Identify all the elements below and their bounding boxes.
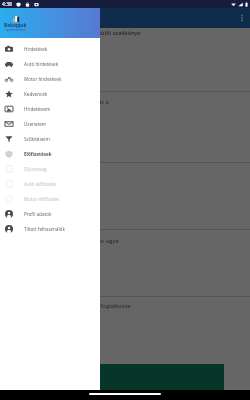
button[interactable]: Hirdetések: [0, 41, 100, 56]
button[interactable]: Díjcsomag: [0, 161, 100, 176]
button[interactable]: Kedvencek: [0, 86, 100, 101]
staticText: Autó előfizetés: [24, 181, 56, 187]
staticText: Díjcsomag: [24, 166, 47, 172]
button[interactable]: Tiltott felhasználók: [0, 221, 100, 236]
button[interactable]: Motor hirdetések: [0, 71, 100, 86]
staticText: Profil adatok: [24, 211, 52, 217]
staticText: Előfizetések: [24, 151, 52, 157]
staticText: apróhirdetések: [6, 28, 26, 32]
button[interactable]: Motor előfizetés: [0, 191, 100, 206]
staticText: A hirdetés ügye: [77, 237, 119, 245]
staticText: Minden benne foglalkozva: [60, 302, 131, 310]
staticText: Tiltott felhasználók: [24, 226, 65, 232]
staticText: Motor előfizetés: [24, 196, 59, 202]
staticText: Autó hirdetések: [24, 61, 59, 67]
button[interactable]: Szűkítéseim: [0, 131, 100, 146]
staticText: Hirdetéseim: [24, 106, 51, 112]
staticText: Hirdetések: [24, 46, 48, 52]
button[interactable]: Profil adatok: [0, 206, 100, 221]
staticText: Bekapjuk: [4, 22, 27, 29]
button[interactable]: More options: [234, 8, 250, 28]
staticText: 4:38: [2, 1, 12, 8]
button[interactable]: Hirdetéseim: [0, 101, 100, 116]
button[interactable]: Üzenetem: [0, 116, 100, 131]
staticText: Üzenetem: [24, 121, 47, 127]
staticText: Bemutatkozás a: [66, 98, 109, 106]
staticText: Motor hirdetések: [24, 76, 62, 82]
button[interactable]: [0, 0, 250, 400]
button[interactable]: Ismerd meg a program kutyái: [0, 364, 224, 390]
button[interactable]: Autó hirdetések: [0, 56, 100, 71]
staticText: Szűkítéseim: [24, 136, 50, 142]
button[interactable]: Autó előfizetés: [0, 176, 100, 191]
button[interactable]: Előfizetések: [0, 146, 100, 161]
staticText: Kedvencek: [24, 91, 48, 97]
button[interactable]: Rendeld meg a Komplex szülői szakkönyv: [28, 29, 141, 37]
